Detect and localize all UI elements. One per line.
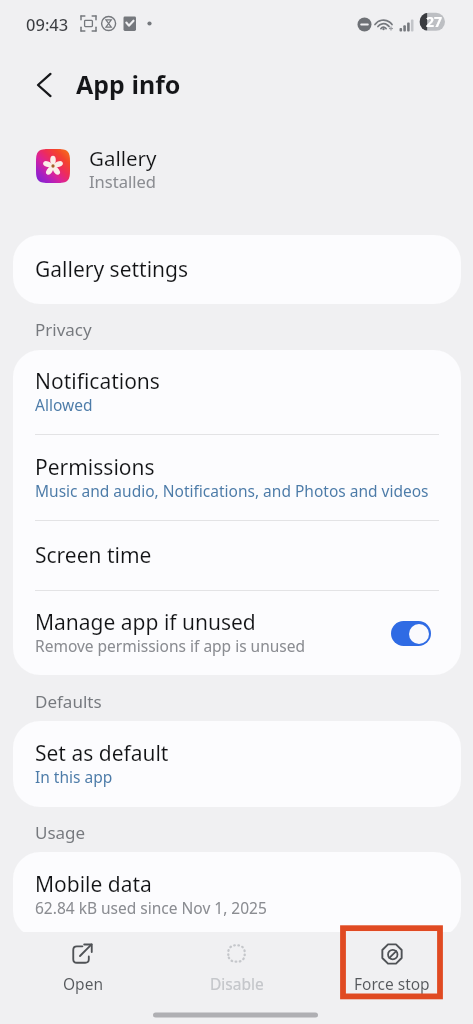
staticText: Open (63, 973, 103, 994)
staticText: Force stop (354, 973, 430, 994)
staticText: Remove permissions if app is unused (35, 635, 306, 656)
staticText: 62.84 kB used since Nov 1, 2025 (35, 897, 267, 918)
button[interactable]: Notifications (13, 350, 461, 434)
button[interactable]: Set as default (13, 721, 461, 807)
staticText: Music and audio, Notifications, and Phot… (35, 480, 429, 501)
staticText: Gallery (89, 144, 157, 172)
staticText: Disable (210, 973, 264, 994)
button[interactable]: Screen time (13, 521, 461, 590)
staticText: Installed (89, 170, 156, 192)
staticText: Set as default (35, 739, 169, 768)
staticText: Allowed (35, 394, 93, 415)
staticText: Defaults (35, 690, 102, 713)
staticText: Usage (35, 821, 86, 844)
staticText: App info (76, 67, 181, 101)
staticText: Screen time (35, 541, 152, 570)
button[interactable]: Force stop (341, 928, 443, 996)
staticText: Manage app if unused (35, 608, 256, 637)
button[interactable]: Back (21, 62, 66, 107)
button[interactable]: Permissions (13, 435, 461, 520)
button[interactable]: Manage app if unused (13, 591, 461, 675)
staticText: Permissions (35, 453, 155, 482)
button[interactable]: Open (32, 928, 134, 996)
button[interactable]: Mobile data (13, 852, 461, 938)
staticText: Gallery settings (35, 255, 189, 284)
staticText: Privacy (35, 318, 92, 341)
button[interactable]: Manage app if unused toggle (391, 621, 431, 646)
staticText: Mobile data (35, 870, 152, 899)
staticText: 09:43 (26, 13, 69, 35)
staticText: In this app (35, 766, 113, 787)
staticText: 27 (426, 12, 443, 31)
button[interactable]: Disable (186, 928, 288, 996)
button[interactable]: Gallery settings (13, 235, 461, 304)
staticText: Notifications (35, 367, 160, 396)
